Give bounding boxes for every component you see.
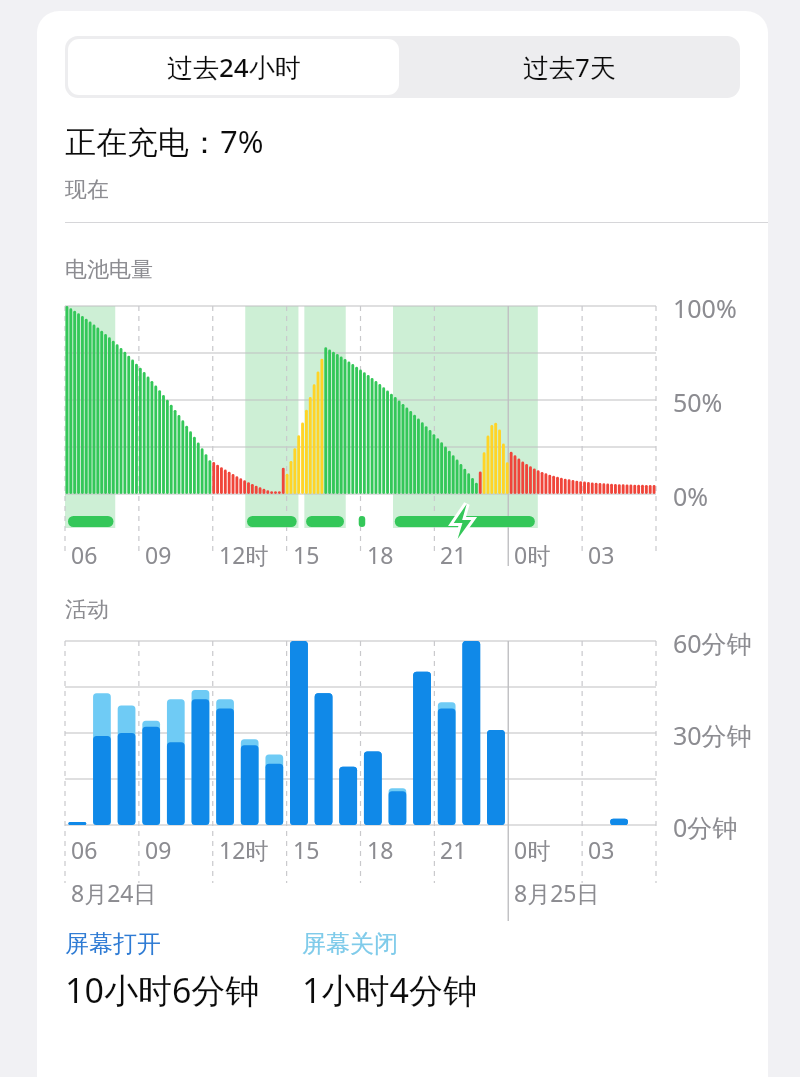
staticText: 03 (588, 834, 615, 865)
staticText: 8月25日 (514, 877, 600, 908)
button[interactable]: 过去7天 (401, 39, 737, 95)
staticText: 现在 (65, 176, 109, 204)
staticText: 10小时6分钟 (65, 967, 260, 1013)
staticText: 18 (367, 539, 394, 570)
staticText: 电池电量 (65, 256, 153, 284)
staticText: 1小时4分钟 (302, 967, 477, 1013)
staticText: 21 (440, 834, 467, 865)
staticText: 过去7天 (523, 49, 616, 85)
staticText: 09 (145, 539, 172, 570)
staticText: 09 (145, 834, 172, 865)
staticText: 15 (293, 539, 320, 570)
staticText: 0时 (514, 834, 551, 865)
staticText: 12时 (219, 834, 269, 865)
staticText: 06 (71, 834, 98, 865)
staticText: 正在充电：7% (65, 120, 264, 162)
button[interactable]: 过去24小时 (68, 39, 399, 95)
staticText: 活动 (65, 596, 109, 624)
staticText: 过去24小时 (167, 49, 301, 85)
staticText: 60分钟 (673, 626, 752, 660)
staticText: 12时 (219, 539, 269, 570)
staticText: 15 (293, 834, 320, 865)
staticText: 03 (588, 539, 615, 570)
staticText: 50% (673, 385, 723, 419)
staticText: 屏幕打开 (65, 929, 161, 959)
staticText: 18 (367, 834, 394, 865)
staticText: 21 (440, 539, 467, 570)
staticText: 0时 (514, 539, 551, 570)
staticText: 8月24日 (71, 877, 157, 908)
staticText: 06 (71, 539, 98, 570)
staticText: 30分钟 (673, 718, 752, 752)
staticText: 0分钟 (673, 810, 738, 844)
staticText: 0% (673, 479, 709, 513)
staticText: 屏幕关闭 (302, 929, 398, 959)
staticText: 100% (673, 291, 737, 325)
